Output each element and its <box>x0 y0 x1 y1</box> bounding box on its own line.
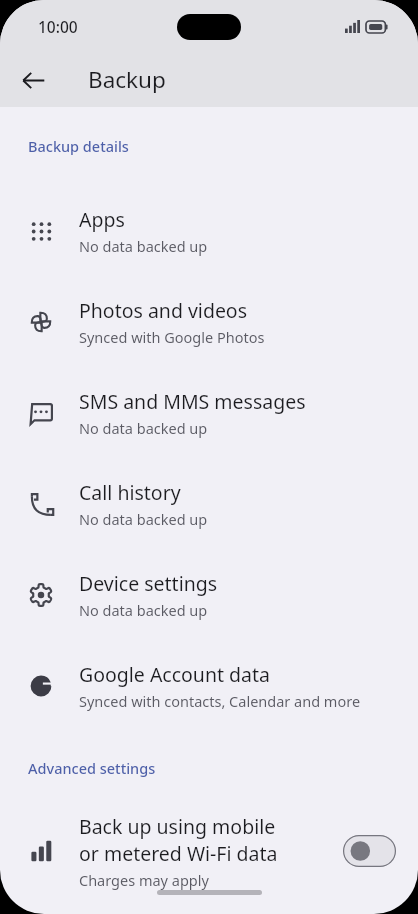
staticText: SMS and MMS messages <box>79 388 306 415</box>
staticText: No data backed up <box>79 418 208 438</box>
staticText: Device settings <box>79 570 218 597</box>
staticText: or metered Wi-Fi data <box>79 840 278 867</box>
staticText: Google Account data <box>79 661 270 688</box>
staticText: No data backed up <box>79 509 208 529</box>
staticText: Apps <box>79 206 125 233</box>
button[interactable]: SMS and MMS messages <box>0 367 418 458</box>
staticText: Back up using mobile <box>79 813 276 840</box>
staticText: Synced with Google Photos <box>79 327 265 347</box>
button[interactable]: Back <box>11 58 55 102</box>
staticText: No data backed up <box>79 236 208 256</box>
button[interactable]: Back up using mobile <box>0 801 418 901</box>
staticText: Call history <box>79 479 181 506</box>
staticText: Advanced settings <box>28 758 156 778</box>
staticText: Backup <box>88 64 166 95</box>
staticText: No data backed up <box>79 600 208 620</box>
staticText: Charges may apply <box>79 870 209 890</box>
staticText: 10:00 <box>38 16 78 37</box>
button[interactable]: Back up using mobile or metered Wi-Fi da… <box>343 835 396 867</box>
staticText: Synced with contacts, Calendar and more <box>79 691 361 711</box>
staticText: Backup details <box>28 136 129 156</box>
button[interactable]: Device settings <box>0 549 418 640</box>
button[interactable]: Photos and videos <box>0 276 418 367</box>
button[interactable]: Call history <box>0 458 418 549</box>
button[interactable]: Google Account data <box>0 640 418 731</box>
button[interactable]: Apps <box>0 185 418 276</box>
staticText: Photos and videos <box>79 297 248 324</box>
